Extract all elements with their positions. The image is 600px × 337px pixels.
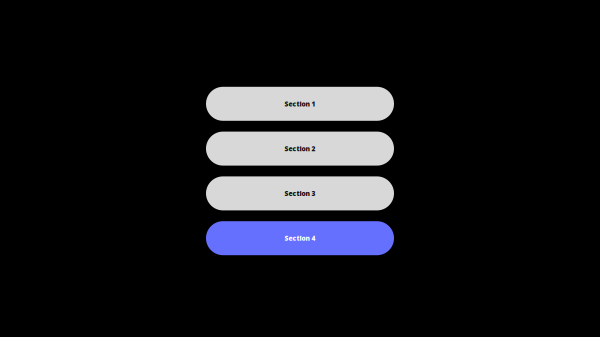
staticText: Section 4 bbox=[284, 234, 315, 243]
button[interactable]: Section 3 bbox=[206, 176, 394, 210]
staticText: Section 1 bbox=[284, 99, 315, 108]
button[interactable]: Section 1 bbox=[206, 87, 394, 121]
staticText: Section 3 bbox=[284, 189, 315, 198]
staticText: Section 2 bbox=[284, 144, 315, 153]
button[interactable]: Section 4 bbox=[206, 221, 394, 255]
button[interactable]: Section 2 bbox=[206, 132, 394, 166]
